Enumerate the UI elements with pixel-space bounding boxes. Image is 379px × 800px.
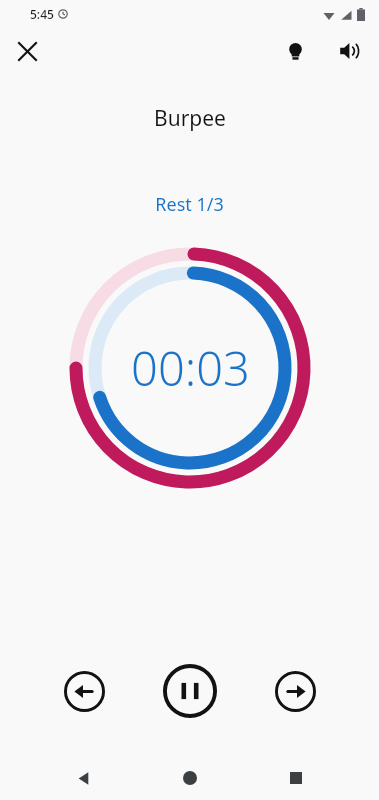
button[interactable]: Pause bbox=[158, 659, 222, 723]
button[interactable]: Previous bbox=[59, 666, 110, 717]
button[interactable]: Sound bbox=[329, 31, 369, 71]
button[interactable]: Back bbox=[60, 756, 106, 800]
staticText: 5:45 bbox=[30, 6, 54, 22]
button[interactable]: Close bbox=[6, 30, 48, 72]
staticText: Burpee bbox=[154, 104, 226, 133]
button[interactable]: Next bbox=[270, 666, 321, 717]
button[interactable]: Recents bbox=[273, 756, 319, 800]
staticText: Rest 1/3 bbox=[155, 192, 224, 217]
staticText: 00:03 bbox=[131, 336, 250, 400]
button[interactable]: Keep screen on bbox=[275, 31, 315, 71]
button[interactable]: Home bbox=[167, 756, 213, 800]
